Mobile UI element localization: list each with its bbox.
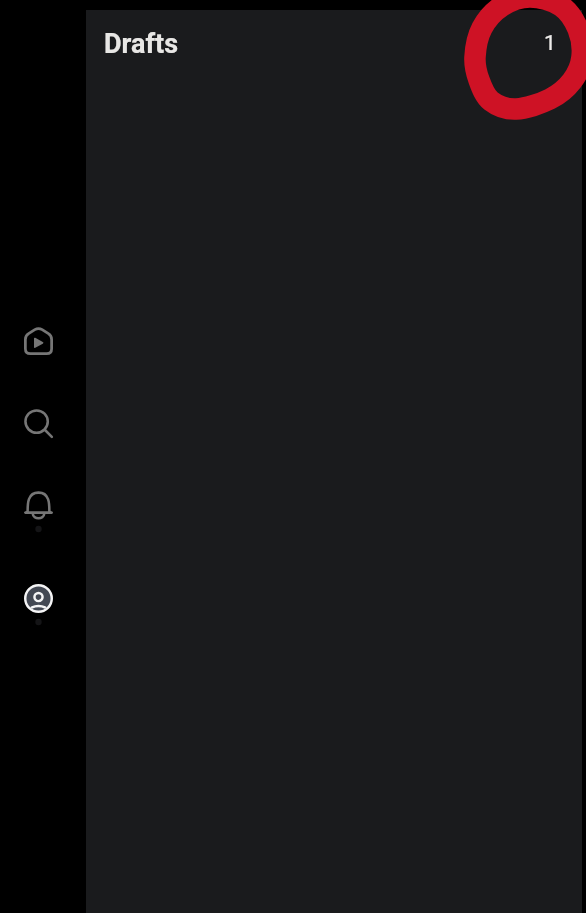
button[interactable]: Draft count bbox=[527, 20, 573, 66]
button[interactable]: Account bbox=[14, 574, 62, 622]
button[interactable]: Home bbox=[14, 316, 62, 364]
staticText: Drafts bbox=[104, 28, 179, 60]
button[interactable]: Notifications bbox=[14, 481, 62, 529]
staticText: 1 bbox=[544, 31, 556, 56]
button[interactable]: Search bbox=[14, 399, 62, 447]
